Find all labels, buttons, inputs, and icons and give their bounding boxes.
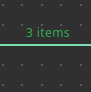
staticText: 3 items bbox=[26, 24, 70, 40]
